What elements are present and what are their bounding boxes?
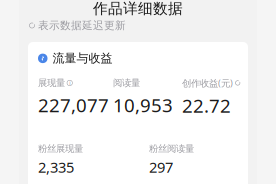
staticText: 粉丝展现量 [38,143,83,154]
staticText: i [69,79,70,86]
staticText: 阅读量 [113,77,140,89]
staticText: 展现量 [38,77,65,89]
staticText: 作品详细数据 [93,0,183,17]
staticText: 227,077 [38,93,109,117]
staticText: 22.72 [182,93,231,118]
staticText: 粉丝阅读量 [149,143,194,154]
staticText: 流量与收益 [52,51,112,66]
staticText: 创作收益(元) [182,77,233,89]
staticText: 表示数据延迟更新 [38,19,126,32]
staticText: 297 [149,157,173,177]
staticText: 10,953 [113,93,173,117]
staticText: 2,335 [38,157,74,177]
